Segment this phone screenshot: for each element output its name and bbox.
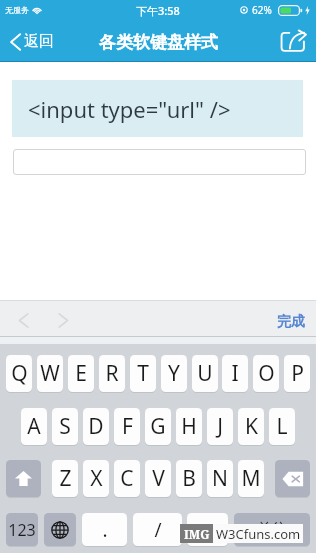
- button[interactable]: R: [99, 355, 125, 392]
- staticText: R: [105, 359, 119, 388]
- staticText: 123: [8, 519, 36, 541]
- staticText: X: [90, 464, 103, 493]
- staticText: D: [88, 412, 104, 441]
- button[interactable]: Shift: [6, 460, 41, 497]
- staticText: 62%: [252, 3, 272, 17]
- staticText: O: [258, 359, 275, 388]
- staticText: I: [231, 359, 239, 388]
- staticText: U: [197, 359, 213, 388]
- staticText: 返回: [24, 32, 54, 51]
- button[interactable]: M: [238, 460, 264, 497]
- staticText: W3Cfuns.com: [216, 525, 301, 543]
- button[interactable]: Next field: [51, 303, 75, 337]
- button[interactable]: L: [269, 408, 295, 445]
- staticText: A: [27, 412, 41, 441]
- button[interactable]: K: [238, 408, 264, 445]
- button[interactable]: A: [21, 408, 47, 445]
- button[interactable]: V: [145, 460, 171, 497]
- button[interactable]: 123: [6, 513, 38, 546]
- staticText: H: [181, 412, 197, 441]
- button[interactable]: Share: [276, 24, 310, 58]
- button[interactable]: Z: [52, 460, 78, 497]
- button[interactable]: F: [114, 408, 140, 445]
- button[interactable]: .com: [187, 513, 228, 546]
- staticText: 无服务: [5, 5, 29, 15]
- staticText: Y: [168, 359, 180, 388]
- staticText: .com: [194, 522, 222, 538]
- staticText: P: [291, 359, 304, 388]
- staticText: 各类软键盘样式: [99, 32, 218, 53]
- staticText: Q: [11, 359, 28, 388]
- staticText: 完成: [277, 313, 305, 331]
- button[interactable]: X: [83, 460, 109, 497]
- staticText: K: [245, 412, 258, 441]
- button[interactable]: I: [222, 355, 248, 392]
- button[interactable]: 返回: [0, 26, 62, 57]
- staticText: .: [102, 517, 108, 543]
- button[interactable]: E: [68, 355, 94, 392]
- staticText: IMG: [184, 526, 210, 542]
- button[interactable]: N: [207, 460, 233, 497]
- staticText: F: [122, 412, 133, 441]
- button[interactable]: U: [192, 355, 218, 392]
- staticText: 前往: [257, 520, 287, 539]
- button[interactable]: G: [145, 408, 171, 445]
- staticText: C: [120, 464, 134, 493]
- staticText: /: [154, 517, 162, 543]
- button[interactable]: D: [83, 408, 109, 445]
- button[interactable]: P: [284, 355, 310, 392]
- staticText: Z: [59, 464, 72, 493]
- staticText: 下午3:58: [136, 3, 180, 18]
- button[interactable]: W: [37, 355, 63, 392]
- button[interactable]: .: [82, 513, 127, 546]
- staticText: <input type="url" />: [28, 94, 231, 124]
- staticText: L: [276, 412, 288, 441]
- staticText: S: [59, 412, 71, 441]
- button[interactable]: Backspace: [275, 460, 310, 497]
- button[interactable]: 完成: [273, 307, 309, 337]
- button[interactable]: Previous field: [12, 303, 36, 337]
- button[interactable]: Q: [6, 355, 32, 392]
- button[interactable]: Switch keyboard: [44, 513, 76, 546]
- button[interactable]: O: [253, 355, 279, 392]
- staticText: T: [137, 359, 149, 388]
- button[interactable]: 前往: [234, 513, 310, 546]
- button[interactable]: /: [133, 513, 182, 546]
- staticText: J: [217, 412, 223, 441]
- button[interactable]: J: [207, 408, 233, 445]
- button[interactable]: C: [114, 460, 140, 497]
- staticText: V: [152, 464, 165, 493]
- button[interactable]: B: [176, 460, 202, 497]
- staticText: B: [182, 464, 196, 493]
- button[interactable]: Y: [161, 355, 187, 392]
- staticText: G: [150, 412, 166, 441]
- button[interactable]: S: [52, 408, 78, 445]
- staticText: W: [40, 359, 60, 388]
- button[interactable]: T: [130, 355, 156, 392]
- button[interactable]: H: [176, 408, 202, 445]
- staticText: E: [75, 359, 87, 388]
- staticText: N: [212, 464, 228, 493]
- staticText: M: [241, 464, 261, 493]
